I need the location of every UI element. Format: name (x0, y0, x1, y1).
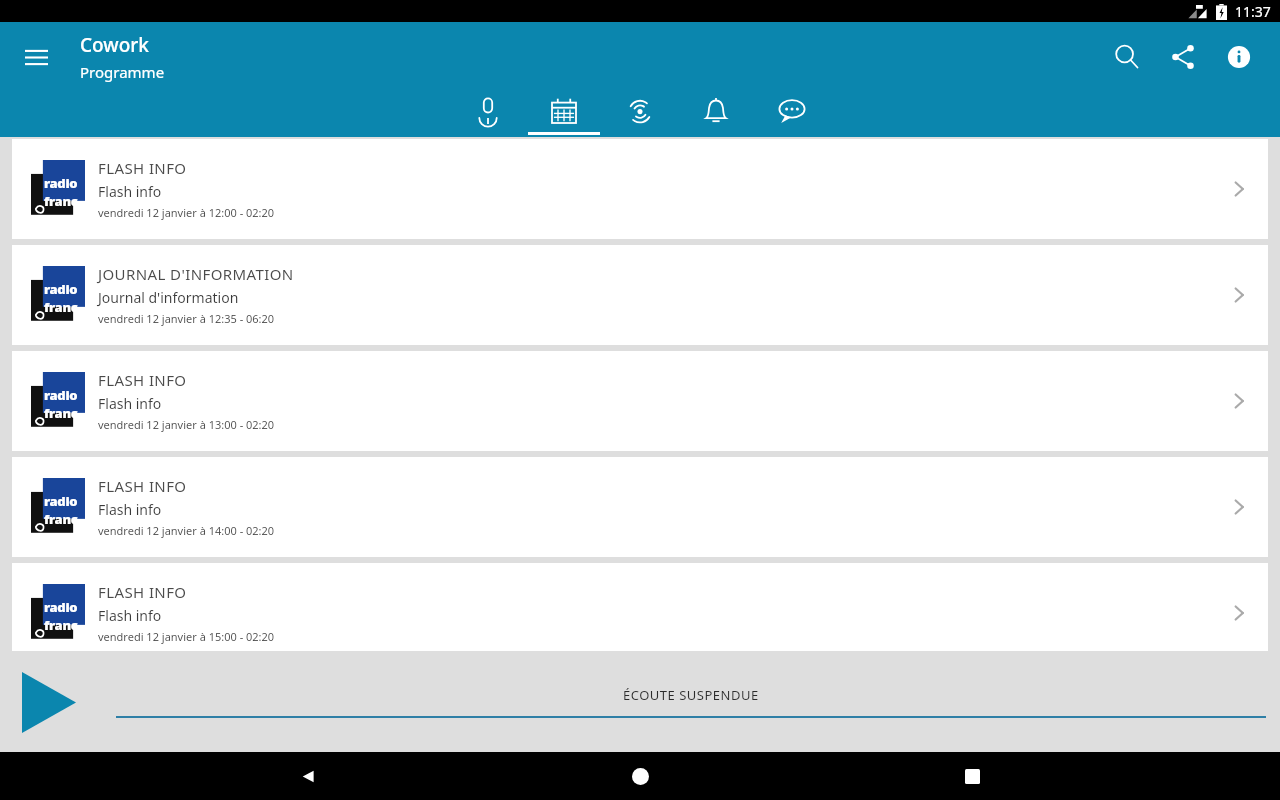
staticText: Flash info (98, 182, 162, 201)
button[interactable]: Live radio (602, 92, 678, 137)
staticText: FLASH INFO (98, 582, 187, 602)
staticText: Flash info (98, 394, 162, 413)
button[interactable]: Voice search (450, 92, 526, 137)
staticText: FLASH INFO (98, 370, 187, 390)
staticText: Programme (80, 62, 165, 82)
button[interactable]: Alerts (678, 92, 754, 137)
button[interactable]: Search (1102, 32, 1152, 82)
staticText: Flash info (98, 606, 162, 625)
button[interactable]: radio (12, 563, 1268, 663)
button[interactable]: Information (1214, 32, 1264, 82)
button[interactable]: radio (12, 351, 1268, 451)
staticText: vendredi 12 janvier à 13:00 - 02:20 (98, 417, 275, 432)
staticText: radio (44, 598, 78, 616)
staticText: FLASH INFO (98, 476, 187, 496)
button[interactable]: radio (12, 245, 1268, 345)
button[interactable]: Messages (754, 92, 830, 137)
staticText: france (44, 510, 84, 528)
staticText: vendredi 12 janvier à 12:00 - 02:20 (98, 205, 275, 220)
staticText: radio (44, 386, 78, 404)
staticText: radio (44, 174, 78, 192)
button[interactable]: Back (284, 752, 332, 800)
staticText: Cowork (80, 32, 149, 58)
staticText: vendredi 12 janvier à 14:00 - 02:20 (98, 523, 275, 538)
button[interactable]: radio (12, 457, 1268, 557)
staticText: FLASH INFO (98, 158, 187, 178)
staticText: france (44, 616, 84, 634)
button[interactable]: Home (616, 752, 664, 800)
button[interactable]: radio (12, 139, 1268, 239)
staticText: 11:37 (1235, 2, 1271, 21)
staticText: france (44, 404, 84, 422)
button[interactable]: Open navigation menu (14, 35, 58, 79)
staticText: Flash info (98, 500, 162, 519)
button[interactable]: Share (1158, 32, 1208, 82)
staticText: france (44, 298, 84, 316)
button[interactable]: Programme schedule (526, 92, 602, 137)
button[interactable]: Play (18, 671, 80, 733)
staticText: france (44, 192, 84, 210)
staticText: ÉCOUTE SUSPENDUE (623, 686, 759, 704)
staticText: vendredi 12 janvier à 15:00 - 02:20 (98, 629, 275, 644)
staticText: radio (44, 492, 78, 510)
staticText: radio (44, 280, 78, 298)
staticText: JOURNAL D'INFORMATION (98, 264, 294, 284)
button[interactable]: Recent apps (948, 752, 996, 800)
staticText: vendredi 12 janvier à 12:35 - 06:20 (98, 311, 275, 326)
staticText: Journal d'information (98, 288, 239, 307)
